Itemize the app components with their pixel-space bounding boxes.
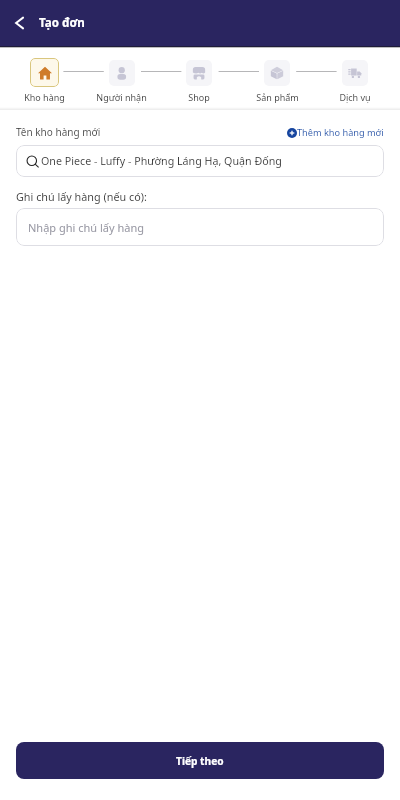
button[interactable]: Sản phẩm [238,46,316,103]
staticText: Tạo đơn [39,15,85,31]
staticText: Shop [188,91,210,103]
staticText: Kho hàng [24,91,65,103]
staticText: Nhập ghi chú lấy hàng [28,220,144,235]
button[interactable]: Shop [160,46,238,103]
button[interactable]: Dịch vụ [316,46,394,103]
button[interactable]: Back [6,9,34,37]
staticText: Thêm kho hàng mới [297,126,384,139]
button[interactable]: Nhập ghi chú lấy hàng [16,208,384,246]
button[interactable]: Người nhận [83,46,160,103]
staticText: Dịch vụ [339,91,371,103]
staticText: Người nhận [96,91,147,103]
staticText: Tên kho hàng mới [16,125,101,139]
button[interactable]: Tiếp theo [16,742,384,779]
staticText: Sản phẩm [256,91,299,103]
staticText: Ghi chú lấy hàng (nếu có): [16,189,147,204]
button[interactable]: Kho hàng [6,46,83,103]
button[interactable]: Thêm kho hàng mới [287,126,384,139]
staticText: Tiếp theo [176,754,224,768]
staticText: One Piece - Luffy - Phường Láng Hạ, Quận… [41,154,282,169]
button[interactable]: One Piece - Luffy - Phường Láng Hạ, Quận… [16,145,384,177]
